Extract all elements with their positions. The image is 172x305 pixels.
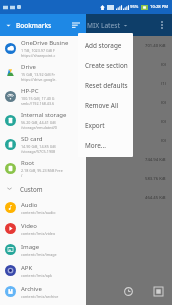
staticText: (0) xyxy=(161,138,166,144)
staticText: Custom xyxy=(20,185,43,193)
staticText: Export xyxy=(85,121,105,130)
staticText: Reset defaults xyxy=(85,81,128,90)
staticText: 10:28 PM xyxy=(150,4,169,10)
button[interactable]: Create section xyxy=(78,55,133,75)
button[interactable]: Select mode xyxy=(150,283,166,299)
staticText: Drive xyxy=(21,63,36,71)
button[interactable]: Reset defaults xyxy=(78,75,133,95)
staticText: (0) xyxy=(161,119,166,125)
staticText: OneDrive Busine xyxy=(21,39,69,47)
staticText: Image xyxy=(21,243,40,251)
staticText: (1) xyxy=(161,81,166,87)
staticText: 100.15 GiB, 17.40 G xyxy=(21,96,55,101)
button[interactable]: APK xyxy=(0,260,86,281)
staticText: content://mix/image xyxy=(21,252,57,257)
staticText: smb://192.168.43.6 xyxy=(21,101,55,106)
staticText: HP-PC xyxy=(21,87,39,95)
staticText: /storage/emulated/0 xyxy=(21,125,57,130)
staticText: 701.40 KiB xyxy=(145,43,166,49)
button[interactable]: Sort xyxy=(68,17,84,33)
staticText: 15 GiB, 13.92 GiB Fr xyxy=(21,72,55,77)
staticText: content://mix/apk xyxy=(21,273,53,278)
staticText: 1 TiB, 1023.97 GiB F xyxy=(21,48,55,53)
staticText: 744.94 KiB xyxy=(145,157,166,163)
button[interactable]: Drive xyxy=(0,60,86,84)
button[interactable]: Video xyxy=(0,218,86,239)
button[interactable]: Internal storage xyxy=(0,108,86,132)
staticText: More... xyxy=(85,141,106,150)
button[interactable]: OneDrive Busine xyxy=(0,36,86,60)
button[interactable]: Root xyxy=(0,156,86,180)
staticText: https://sharepoint.c xyxy=(21,53,56,58)
button[interactable]: More options xyxy=(154,17,170,33)
staticText: Archive xyxy=(21,285,42,293)
staticText: SD card xyxy=(21,135,43,143)
staticText: Root xyxy=(21,159,35,167)
other: Collapse bookmarks xyxy=(5,22,12,29)
staticText: / xyxy=(21,173,23,178)
staticText: https://drive.google. xyxy=(21,77,57,82)
staticText: content://mix/audio xyxy=(21,210,56,215)
button[interactable]: SD card xyxy=(0,132,86,156)
staticText: content://mix/archive xyxy=(21,294,59,299)
button[interactable]: History xyxy=(120,283,136,299)
staticText: APK xyxy=(21,264,33,272)
staticText: Create section xyxy=(85,61,128,70)
button[interactable]: Custom xyxy=(0,180,86,197)
button[interactable]: More... xyxy=(78,135,133,155)
staticText: 56.20 GiB, 44.41 GiB xyxy=(21,120,56,125)
staticText: (0) xyxy=(161,62,166,68)
staticText: 2.18 GiB, 95.23 MiB Free xyxy=(21,168,63,173)
staticText: 95% xyxy=(130,4,139,10)
button[interactable]: Export xyxy=(78,115,133,135)
staticText: Video xyxy=(21,222,37,230)
button[interactable]: Image xyxy=(0,239,86,260)
button[interactable]: Archive xyxy=(0,281,86,302)
staticText: (0) xyxy=(161,100,166,106)
button[interactable]: Collapse bookmarks xyxy=(0,14,86,36)
staticText: Audio xyxy=(21,201,38,209)
staticText: 14.90 GiB, 14.85 GiB xyxy=(21,144,56,149)
staticText: Bookmarks xyxy=(16,21,52,30)
button[interactable]: Audio xyxy=(0,197,86,218)
staticText: Add storage xyxy=(85,41,122,50)
button[interactable]: HP-PC xyxy=(0,84,86,108)
staticText: 464.45 KiB xyxy=(145,195,166,201)
button[interactable]: Add storage xyxy=(78,35,133,55)
staticText: content://mix/video xyxy=(21,231,56,236)
button[interactable]: Remove All xyxy=(78,95,133,115)
staticText: 583.76 KiB xyxy=(145,176,166,182)
staticText: Remove All xyxy=(85,101,119,110)
staticText: MIX Latest xyxy=(87,21,120,30)
staticText: Internal storage xyxy=(21,111,67,119)
staticText: /storage/57C5-1908 xyxy=(21,149,56,154)
